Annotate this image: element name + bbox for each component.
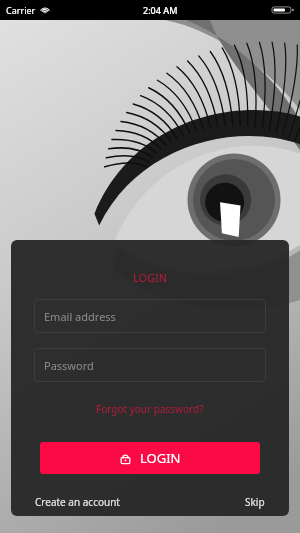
staticText: LOGIN	[140, 449, 181, 467]
staticText: Skip	[245, 495, 265, 509]
button[interactable]: Email address	[34, 299, 266, 333]
button[interactable]: Forgot your password?	[11, 402, 289, 416]
staticText: Forgot your password?	[96, 402, 204, 416]
staticText: Create an account	[35, 495, 120, 509]
button[interactable]: LOGIN	[40, 442, 260, 474]
staticText: Carrier	[6, 4, 36, 16]
staticText: LOGIN	[11, 270, 289, 285]
staticText: Email address	[44, 309, 116, 324]
button[interactable]: Create an account	[35, 492, 120, 512]
button[interactable]: Password	[34, 348, 266, 382]
staticText: 2:04 AM	[143, 4, 178, 16]
button[interactable]: Skip	[245, 492, 265, 512]
staticText: Password	[44, 358, 94, 373]
